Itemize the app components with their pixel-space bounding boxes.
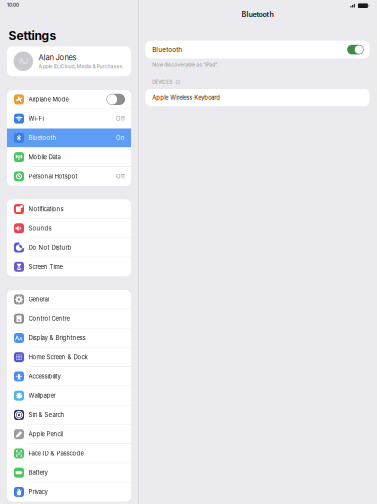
button[interactable]: Control Centre xyxy=(7,309,131,328)
staticText: Privacy xyxy=(28,488,47,496)
staticText: Off xyxy=(116,173,125,180)
button[interactable]: Home Screen & Dock xyxy=(7,348,131,367)
button[interactable]: Display & Brightness xyxy=(7,328,131,347)
button[interactable]: AJ xyxy=(7,46,131,76)
staticText: Bluetooth xyxy=(28,134,56,141)
staticText: Bluetooth xyxy=(241,10,273,19)
button[interactable]: Wallpaper xyxy=(7,386,131,405)
button[interactable]: Privacy xyxy=(7,482,131,501)
staticText: On xyxy=(116,134,125,141)
staticText: Face ID & Passcode xyxy=(28,450,83,457)
staticText: Display & Brightness xyxy=(28,334,85,342)
staticText: Mobile Data xyxy=(28,153,60,161)
button[interactable]: Do Not Disturb xyxy=(7,238,131,257)
staticText: Now discoverable as “iPad”. xyxy=(152,61,218,68)
button[interactable]: Bluetooth xyxy=(7,128,131,147)
staticText: Alan Jones xyxy=(38,53,76,62)
staticText: 10:00 xyxy=(7,2,19,8)
button[interactable]: Mobile Data xyxy=(7,148,131,167)
staticText: General xyxy=(28,296,48,303)
staticText: Do Not Disturb xyxy=(28,244,71,251)
staticText: Control Centre xyxy=(28,315,69,322)
staticText: Wallpaper xyxy=(28,392,55,399)
staticText: Accessibility xyxy=(28,373,60,380)
staticText: Apple Wireless Keyboard xyxy=(152,94,220,101)
staticText: Screen Time xyxy=(28,263,62,270)
staticText: Settings xyxy=(8,28,56,43)
staticText: Sounds xyxy=(28,225,51,232)
button[interactable]: Apple Pencil xyxy=(7,425,131,444)
staticText: Airplane Mode xyxy=(28,96,68,103)
button[interactable]: Face ID & Passcode xyxy=(7,444,131,463)
staticText: Off xyxy=(116,115,125,122)
staticText: Home Screen & Dock xyxy=(28,353,87,361)
button[interactable]: Siri & Search xyxy=(7,405,131,424)
button[interactable]: General xyxy=(7,290,131,309)
staticText: Wi-Fi xyxy=(28,115,43,122)
staticText: Apple ID, iCloud, Media & Purchases xyxy=(38,63,122,69)
button[interactable]: Airplane Mode xyxy=(7,90,131,109)
staticText: Notifications xyxy=(28,205,63,213)
button[interactable]: Battery xyxy=(7,463,131,482)
staticText: AJ xyxy=(19,57,28,66)
staticText: Bluetooth xyxy=(152,46,182,53)
button[interactable]: Bluetooth xyxy=(145,41,370,58)
button[interactable]: Wi-Fi xyxy=(7,109,131,128)
staticText: Battery xyxy=(28,469,47,476)
staticText: Apple Pencil xyxy=(28,430,62,438)
button[interactable]: Accessibility xyxy=(7,367,131,386)
button[interactable]: Screen Time xyxy=(7,257,131,276)
button[interactable]: Sounds xyxy=(7,219,131,238)
staticText: Personal Hotspot xyxy=(28,173,77,180)
button[interactable]: Apple Wireless Keyboard xyxy=(145,89,370,106)
button[interactable]: Personal Hotspot xyxy=(7,167,131,186)
button[interactable]: Notifications xyxy=(7,200,131,218)
staticText: DEVICES xyxy=(152,79,172,85)
staticText: Siri & Search xyxy=(28,411,64,419)
